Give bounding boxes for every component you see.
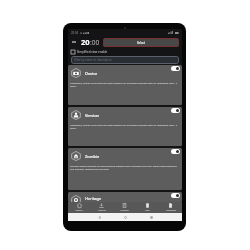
staticText: 20:04 [71, 31, 79, 35]
button[interactable]: Toggle [171, 66, 180, 71]
button[interactable]: Heritage [68, 192, 182, 202]
staticText: Device [85, 71, 98, 76]
staticText: Lessons aimed damage by transforming wea… [70, 164, 179, 171]
button[interactable]: Warranty [113, 202, 136, 213]
staticText: Select [137, 41, 145, 45]
button[interactable]: Toggle [171, 193, 180, 198]
staticText: Warranty [120, 209, 129, 212]
staticText: Docs [145, 209, 150, 212]
button[interactable]: Back [71, 38, 77, 46]
staticText: Simplified view enable [77, 50, 108, 54]
staticText: Version [85, 113, 100, 118]
button[interactable]: Back [86, 213, 112, 221]
staticText: Filter by name or description [74, 58, 112, 62]
button[interactable]: Home [112, 213, 138, 221]
button[interactable]: Recents [138, 213, 164, 221]
staticText: 20 [81, 37, 90, 47]
staticText: :00 [90, 38, 100, 47]
staticText: Nowadays, health cards emit the main wea… [70, 123, 179, 130]
button[interactable]: Docs [136, 202, 159, 213]
button[interactable]: Select [103, 38, 179, 47]
staticText: Zombie [85, 154, 100, 159]
button[interactable]: Version [68, 107, 182, 146]
button[interactable]: Device [68, 65, 182, 105]
button[interactable]: Filter by name or description [71, 56, 179, 64]
staticText: Knowledge [166, 209, 176, 212]
staticText: Heritage [85, 196, 102, 201]
button[interactable]: Zombie [68, 148, 182, 190]
button[interactable]: Knowledge [159, 202, 182, 213]
button[interactable]: Support [68, 202, 90, 213]
staticText: Support [75, 209, 83, 212]
staticText: Nowadays, health cards emit the main wea… [70, 81, 179, 88]
button[interactable]: Upgrade [90, 202, 113, 213]
button[interactable]: Simplified view enable [71, 48, 179, 55]
button[interactable]: Toggle [171, 108, 180, 113]
staticText: Upgrade [98, 209, 106, 212]
button[interactable]: Toggle [171, 149, 180, 154]
